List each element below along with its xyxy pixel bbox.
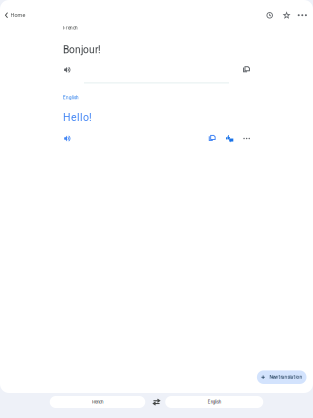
staticText: Hello!: [63, 111, 92, 123]
button[interactable]: Listen to translation: [63, 134, 72, 143]
button[interactable]: Rate this translation: [225, 134, 234, 143]
staticText: Bonjour!: [63, 44, 101, 56]
button[interactable]: Listen to source text: [63, 65, 72, 74]
button[interactable]: More translation options: [242, 137, 251, 140]
button[interactable]: English: [165, 396, 263, 408]
button[interactable]: Swap languages: [146, 396, 166, 408]
button[interactable]: Copy source text: [242, 65, 251, 74]
staticText: Home: [11, 12, 26, 18]
button[interactable]: Home: [0, 7, 30, 23]
button[interactable]: Save translation: [278, 7, 295, 24]
button[interactable]: New translation: [257, 370, 306, 384]
button[interactable]: Copy translation: [208, 134, 217, 143]
button[interactable]: French: [50, 396, 145, 408]
staticText: French: [92, 399, 103, 405]
staticText: English: [63, 95, 78, 100]
button[interactable]: More options: [295, 7, 310, 24]
staticText: New translation: [269, 374, 302, 380]
button[interactable]: History: [261, 7, 278, 24]
staticText: French: [63, 25, 78, 31]
staticText: English: [208, 399, 221, 405]
